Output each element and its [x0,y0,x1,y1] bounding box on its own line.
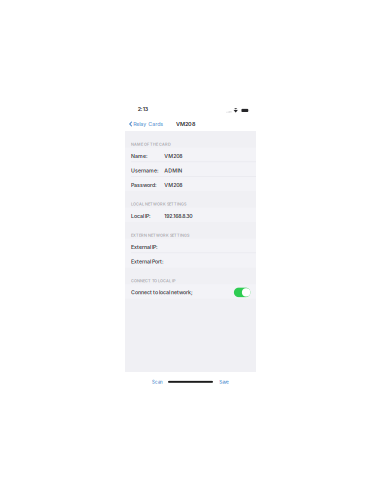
staticText: Save [219,380,229,385]
staticText: Local IP: [131,213,151,219]
button[interactable]: Save [216,377,232,387]
staticText: 192.168.8.30 [164,213,192,219]
staticText: CONNECT TO LOCAL IP [131,278,175,283]
staticText: External IP: [131,244,158,250]
button[interactable]: Local IP: [125,208,256,222]
button[interactable]: Connect to local network [234,288,250,297]
staticText: EXTERN NETWORK SETTINGS [131,233,189,238]
staticText: LOCAL NETWORK SETTINGS [131,202,186,206]
staticText: VM208 [164,182,182,188]
staticText: NAME OF THE CARD [131,142,171,147]
button[interactable]: Name: [125,148,256,162]
button[interactable]: Scan [149,377,166,387]
button[interactable]: External Port: [125,253,256,267]
staticText: Username: [131,167,159,174]
staticText: Password: [131,182,157,188]
staticText: ADMIN [164,167,182,174]
staticText: Connect to local network; [131,289,193,296]
button[interactable]: Password: [125,176,256,191]
staticText: VM208 [176,121,195,127]
button[interactable]: Relay Cards [125,118,166,130]
staticText: Scan [152,380,163,385]
staticText: Name: [131,153,148,159]
staticText: Relay Cards [133,121,163,127]
button[interactable]: Username: [125,162,256,176]
staticText: VM208 [164,153,182,159]
button[interactable]: External IP: [125,239,256,253]
staticText: 2:13 [138,106,148,112]
staticText: External Port: [131,258,164,265]
